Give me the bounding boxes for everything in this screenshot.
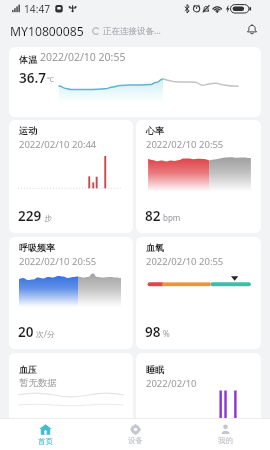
- staticText: 82: [145, 207, 161, 225]
- staticText: 体温: [19, 54, 37, 65]
- staticText: 20: [18, 323, 34, 341]
- button[interactable]: 睡眠: [136, 353, 261, 423]
- staticText: 呼吸频率: [19, 242, 55, 253]
- button[interactable]: 血压: [9, 353, 133, 423]
- staticText: 2022/02/10 20:44: [19, 138, 97, 151]
- staticText: 睡眠: [146, 364, 164, 375]
- button[interactable]: 98: [136, 237, 261, 349]
- staticText: 血氧: [146, 242, 164, 253]
- staticText: ℃: [47, 75, 54, 85]
- button[interactable]: 20: [9, 237, 133, 349]
- staticText: 98: [145, 323, 161, 341]
- staticText: 36.7: [19, 69, 46, 87]
- staticText: 正在连接设备...: [103, 25, 161, 37]
- button[interactable]: 82: [136, 120, 261, 233]
- other: Connecting: [92, 27, 100, 35]
- staticText: %: [163, 328, 170, 339]
- staticText: 2022/02/10 20:55: [146, 255, 224, 268]
- staticText: 设备: [128, 436, 143, 445]
- staticText: 运动: [19, 125, 37, 136]
- staticText: MY10800085: [10, 23, 84, 40]
- button[interactable]: 首页: [0, 419, 90, 450]
- staticText: 心率: [146, 125, 164, 136]
- staticText: 229: [18, 207, 42, 225]
- button[interactable]: Notifications: [243, 18, 261, 44]
- button[interactable]: 设备: [90, 419, 180, 450]
- staticText: 血压: [19, 364, 37, 375]
- button[interactable]: 我的: [180, 419, 270, 450]
- staticText: 2022/02/10 20:55: [146, 138, 224, 151]
- staticText: 2022/02/10: [146, 377, 197, 390]
- staticText: 我的: [218, 436, 233, 445]
- button[interactable]: 体温: [9, 47, 261, 117]
- staticText: bpm: [163, 212, 181, 223]
- button[interactable]: 229: [9, 120, 133, 233]
- staticText: 2022/02/10 20:55: [19, 255, 97, 268]
- staticText: 2022/02/10 20:55: [40, 50, 126, 64]
- staticText: 14:47: [24, 2, 51, 16]
- staticText: 步: [44, 213, 52, 223]
- staticText: 次/分: [36, 328, 55, 339]
- staticText: 首页: [38, 437, 53, 446]
- staticText: 暂无数据: [19, 377, 57, 389]
